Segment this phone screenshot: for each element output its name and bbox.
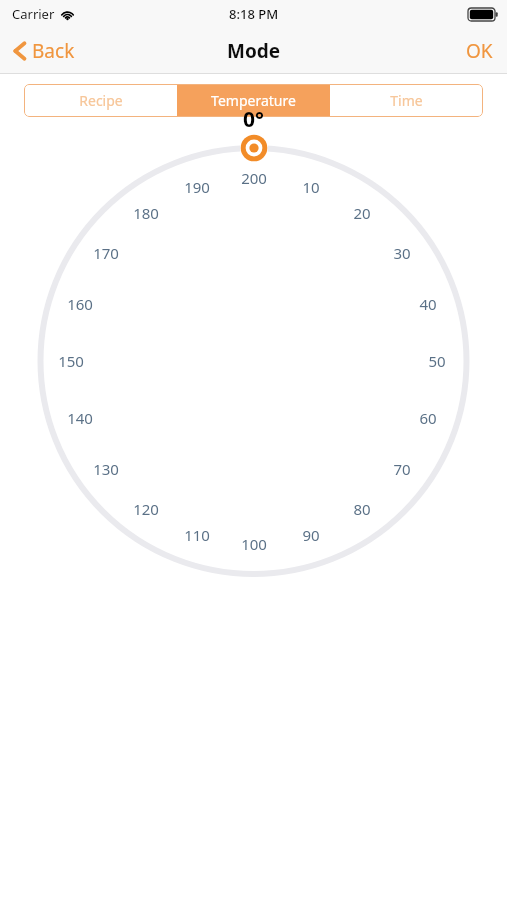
staticText: 100 xyxy=(241,534,267,554)
staticText: Carrier xyxy=(12,5,55,23)
staticText: Back xyxy=(32,38,75,64)
staticText: 50 xyxy=(428,351,446,371)
staticText: 8:18 PM xyxy=(229,5,279,23)
staticText: 190 xyxy=(184,177,210,197)
staticText: 150 xyxy=(58,351,84,371)
button[interactable]: Back xyxy=(0,33,89,69)
staticText: 200 xyxy=(241,168,267,188)
staticText: 10 xyxy=(302,177,320,197)
staticText: 80 xyxy=(353,499,371,519)
staticText: 70 xyxy=(393,459,411,479)
staticText: 130 xyxy=(93,459,119,479)
button[interactable]: Temperature dial handle xyxy=(240,134,268,162)
button[interactable]: Time xyxy=(330,84,483,117)
staticText: 110 xyxy=(184,525,210,545)
staticText: Recipe xyxy=(79,91,123,110)
staticText: 90 xyxy=(302,525,320,545)
staticText: Time xyxy=(390,91,423,110)
staticText: 170 xyxy=(93,243,119,263)
button[interactable]: Recipe xyxy=(24,84,177,117)
button[interactable]: Temperature xyxy=(177,84,330,117)
button[interactable]: OK xyxy=(450,30,507,72)
staticText: 140 xyxy=(67,408,93,428)
staticText: OK xyxy=(466,38,493,64)
staticText: 30 xyxy=(393,243,411,263)
staticText: 40 xyxy=(419,294,437,314)
staticText: Mode xyxy=(227,38,281,64)
staticText: 180 xyxy=(133,203,159,223)
staticText: 160 xyxy=(67,294,93,314)
staticText: 120 xyxy=(133,499,159,519)
staticText: 60 xyxy=(419,408,437,428)
staticText: 0° xyxy=(243,105,264,134)
staticText: 20 xyxy=(353,203,371,223)
staticText: Temperature xyxy=(211,91,296,110)
